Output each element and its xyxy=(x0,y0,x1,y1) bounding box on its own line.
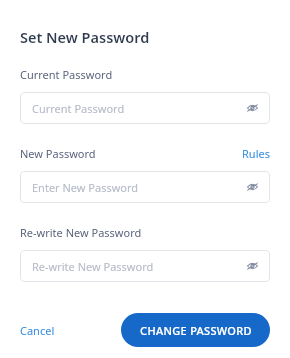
button[interactable]: Show password xyxy=(244,179,260,195)
staticText: Rules xyxy=(242,146,270,161)
button[interactable]: Cancel xyxy=(20,321,55,340)
staticText: CHANGE PASSWORD xyxy=(140,323,252,338)
button[interactable]: Enter New Password xyxy=(20,171,270,203)
staticText: Current Password xyxy=(32,101,244,116)
button[interactable]: Rules xyxy=(242,146,270,161)
staticText: Enter New Password xyxy=(32,180,244,195)
button[interactable]: Show password xyxy=(244,100,260,116)
staticText: Set New Password xyxy=(20,27,150,47)
staticText: Cancel xyxy=(20,323,55,338)
staticText: Re-write New Password xyxy=(20,225,142,240)
button[interactable]: CHANGE PASSWORD xyxy=(121,313,270,347)
staticText: Re-write New Password xyxy=(32,259,244,274)
staticText: Current Password xyxy=(20,67,113,82)
button[interactable]: Show password xyxy=(244,258,260,274)
staticText: New Password xyxy=(20,146,96,161)
button[interactable]: Current Password xyxy=(20,92,270,124)
button[interactable]: Re-write New Password xyxy=(20,250,270,282)
